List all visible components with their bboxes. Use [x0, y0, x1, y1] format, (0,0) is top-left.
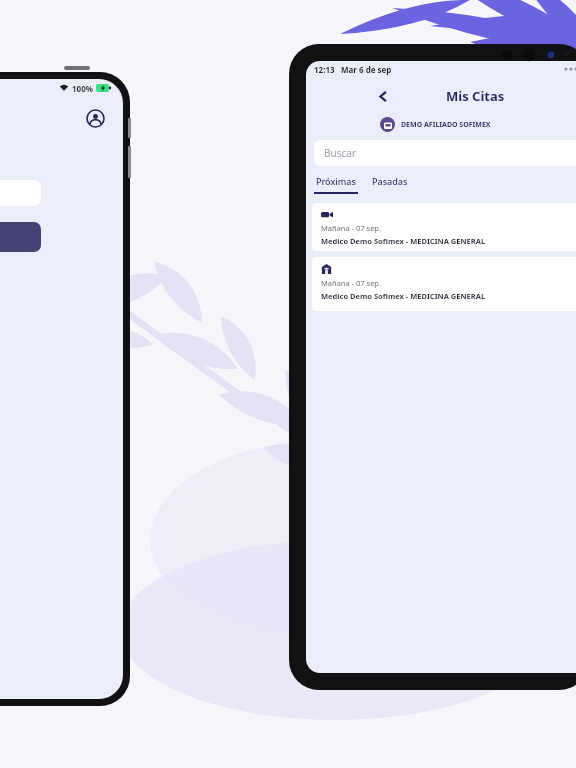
staticText: Medico Demo Sofimex - MEDICINA GENERAL: [321, 236, 486, 246]
button[interactable]: Mañana - 07 sep.: [312, 257, 576, 311]
staticText: Mis Citas: [446, 87, 505, 105]
staticText: Mañana - 07 sep.: [321, 223, 381, 233]
staticText: Próximas: [316, 175, 356, 187]
button[interactable]: Próximas: [314, 174, 358, 194]
staticText: DEMO AFILIADO SOFIMEX: [401, 120, 491, 130]
button[interactable]: Perfil: [86, 109, 105, 128]
staticText: Medico Demo Sofimex - MEDICINA GENERAL: [321, 291, 486, 301]
button[interactable]: DEMO AFILIADO SOFIMEX: [380, 117, 576, 132]
staticText: Buscar: [324, 146, 357, 160]
staticText: Mar 6 de sep: [341, 64, 392, 75]
button[interactable]: [0, 222, 41, 252]
staticText: Pasadas: [372, 175, 408, 187]
button[interactable]: Pasadas: [370, 174, 410, 188]
button[interactable]: Buscar: [314, 140, 576, 166]
staticText: 12:13: [314, 64, 335, 75]
button[interactable]: Mañana - 07 sep.: [312, 203, 576, 251]
staticText: 100%: [72, 83, 93, 94]
button[interactable]: Atrás: [372, 85, 394, 107]
staticText: Mañana - 07 sep.: [321, 278, 381, 288]
